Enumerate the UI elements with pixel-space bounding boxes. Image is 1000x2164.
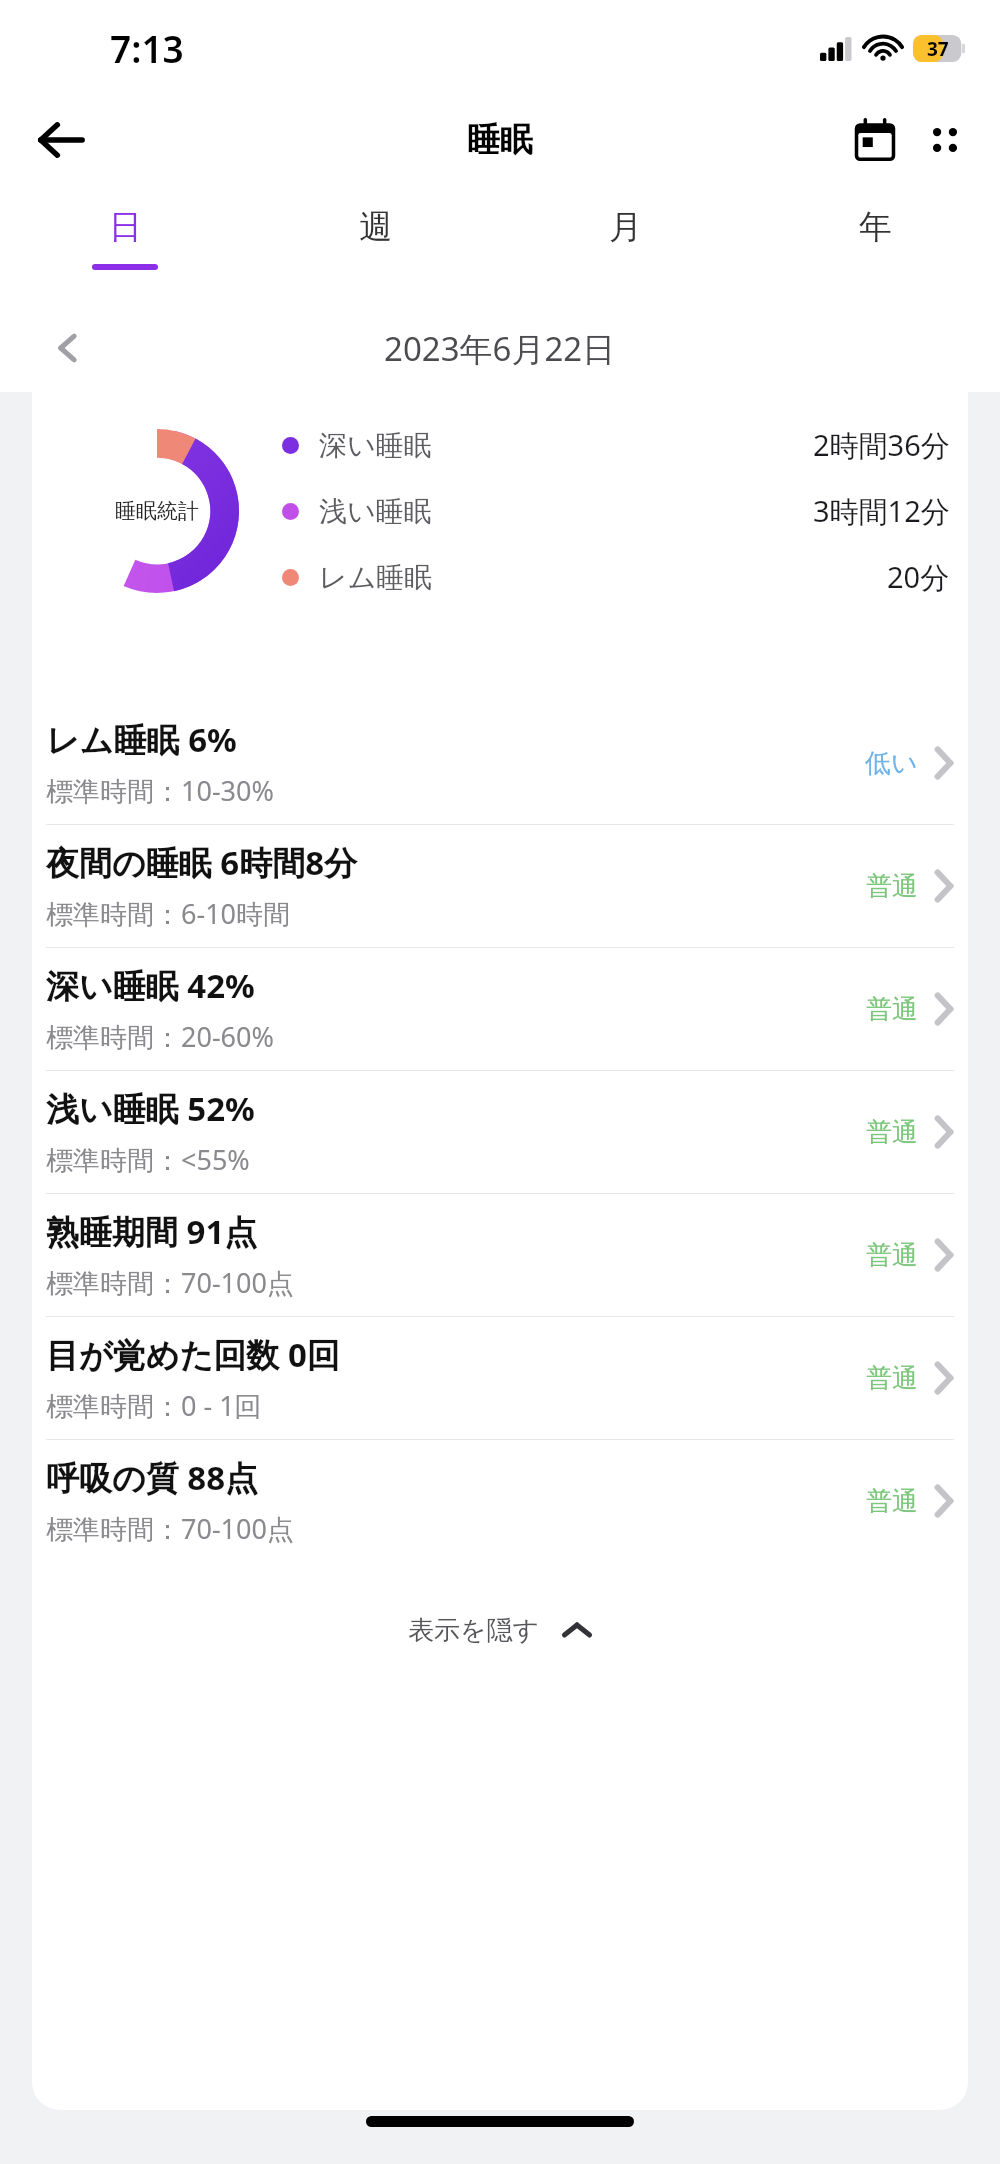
staticText: 月 bbox=[609, 206, 642, 248]
staticText: 20分 bbox=[887, 557, 950, 597]
staticText: 深い睡眠 42% bbox=[46, 963, 255, 1008]
staticText: 2023年6月22日 bbox=[384, 326, 616, 371]
button[interactable]: レム睡眠 bbox=[282, 557, 950, 597]
button[interactable]: Calendar bbox=[840, 105, 910, 175]
staticText: 標準時間：20-60% bbox=[46, 1018, 274, 1055]
staticText: 37 bbox=[927, 36, 949, 62]
button[interactable]: 熟睡期間 91点 bbox=[46, 1194, 954, 1316]
button[interactable]: 年 bbox=[750, 184, 1000, 304]
button[interactable]: 浅い睡眠 bbox=[282, 491, 950, 531]
staticText: 睡眠統計 bbox=[115, 498, 199, 524]
staticText: 標準時間：6-10時間 bbox=[46, 895, 291, 932]
staticText: 浅い睡眠 bbox=[319, 494, 432, 529]
staticText: 深い睡眠 bbox=[319, 428, 432, 463]
staticText: 2時間36分 bbox=[813, 425, 950, 465]
staticText: 睡眠 bbox=[467, 119, 533, 161]
staticText: 日 bbox=[109, 206, 142, 248]
button[interactable]: 呼吸の質 88点 bbox=[46, 1440, 954, 1562]
button[interactable]: 浅い睡眠 52% bbox=[46, 1071, 954, 1193]
staticText: 普通 bbox=[866, 1116, 918, 1149]
button[interactable]: レム睡眠 6% bbox=[46, 702, 954, 824]
staticText: 呼吸の質 88点 bbox=[46, 1455, 259, 1500]
button[interactable]: 深い睡眠 bbox=[282, 425, 950, 465]
staticText: 標準時間：70-100点 bbox=[46, 1264, 294, 1301]
staticText: 普通 bbox=[866, 870, 918, 903]
staticText: 夜間の睡眠 6時間8分 bbox=[46, 840, 358, 885]
button[interactable]: 月 bbox=[500, 184, 750, 304]
staticText: レム睡眠 6% bbox=[46, 717, 237, 762]
staticText: 7:13 bbox=[110, 23, 184, 73]
staticText: 普通 bbox=[866, 993, 918, 1026]
button[interactable]: 夜間の睡眠 6時間8分 bbox=[46, 825, 954, 947]
staticText: 標準時間：70-100点 bbox=[46, 1510, 294, 1547]
staticText: 普通 bbox=[866, 1239, 918, 1272]
staticText: 標準時間：10-30% bbox=[46, 772, 274, 809]
staticText: 標準時間：0 - 1回 bbox=[46, 1387, 262, 1424]
button[interactable]: More options bbox=[910, 105, 980, 175]
staticText: 標準時間：<55% bbox=[46, 1141, 250, 1178]
staticText: レム睡眠 bbox=[319, 560, 433, 595]
button[interactable]: 週 bbox=[250, 184, 500, 304]
button[interactable]: 深い睡眠 42% bbox=[46, 948, 954, 1070]
button[interactable]: Back bbox=[25, 104, 97, 176]
staticText: 3時間12分 bbox=[813, 491, 950, 531]
staticText: 年 bbox=[859, 206, 892, 248]
button[interactable]: 日 bbox=[0, 184, 250, 304]
staticText: 低い bbox=[865, 747, 918, 780]
staticText: 普通 bbox=[866, 1362, 918, 1395]
button[interactable]: 目が覚めた回数 0回 bbox=[46, 1317, 954, 1439]
staticText: 週 bbox=[359, 206, 392, 248]
staticText: 普通 bbox=[866, 1485, 918, 1518]
staticText: 表示を隠す bbox=[408, 1614, 540, 1647]
staticText: 目が覚めた回数 0回 bbox=[46, 1332, 340, 1377]
staticText: 熟睡期間 91点 bbox=[46, 1209, 258, 1254]
button[interactable]: 表示を隠す bbox=[32, 1592, 968, 1668]
staticText: 浅い睡眠 52% bbox=[46, 1086, 255, 1131]
button[interactable]: Previous day bbox=[40, 320, 96, 376]
